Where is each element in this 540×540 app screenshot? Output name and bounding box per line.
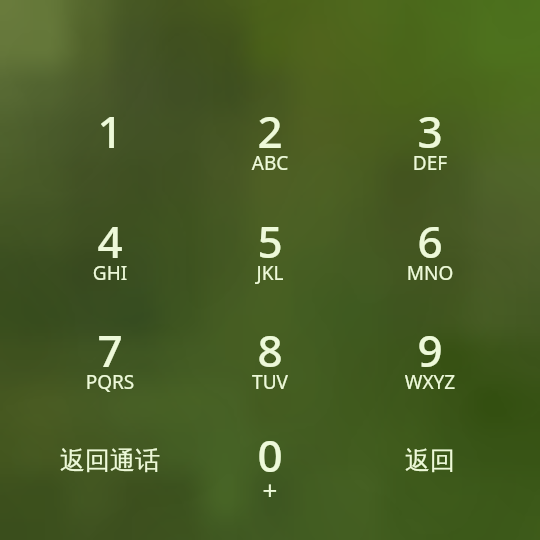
staticText: 9 [365,320,495,374]
button[interactable]: 3 [365,94,495,190]
staticText: 返回通话 [60,445,160,476]
button[interactable]: 2 [205,94,335,190]
button[interactable]: 8 [205,313,335,409]
staticText: ABC [205,150,335,182]
staticText: JKL [205,260,335,292]
button[interactable]: 返回通话 [35,437,185,483]
staticText: + [205,472,335,504]
button[interactable]: 6 [365,204,495,300]
button[interactable]: 9 [365,313,495,409]
staticText: WXYZ [365,369,495,401]
button[interactable]: 1 [45,94,175,190]
button[interactable]: 4 [45,204,175,300]
button[interactable]: 5 [205,204,335,300]
button[interactable]: 7 [45,313,175,409]
staticText: 0 [205,425,335,479]
staticText: 3 [365,101,495,155]
staticText: 7 [45,320,175,374]
button[interactable]: 0 plus [205,418,335,514]
staticText: DEF [365,150,495,182]
staticText: GHI [45,260,175,292]
staticText: MNO [365,260,495,292]
staticText: PQRS [45,369,175,401]
staticText: TUV [205,369,335,401]
staticText: 8 [205,320,335,374]
staticText: 6 [365,211,495,265]
staticText: 4 [45,211,175,265]
staticText: 2 [205,101,335,155]
staticText: 1 [45,101,175,155]
staticText: 返回 [405,445,455,476]
button[interactable]: 返回 [355,437,505,483]
staticText: 5 [205,211,335,265]
